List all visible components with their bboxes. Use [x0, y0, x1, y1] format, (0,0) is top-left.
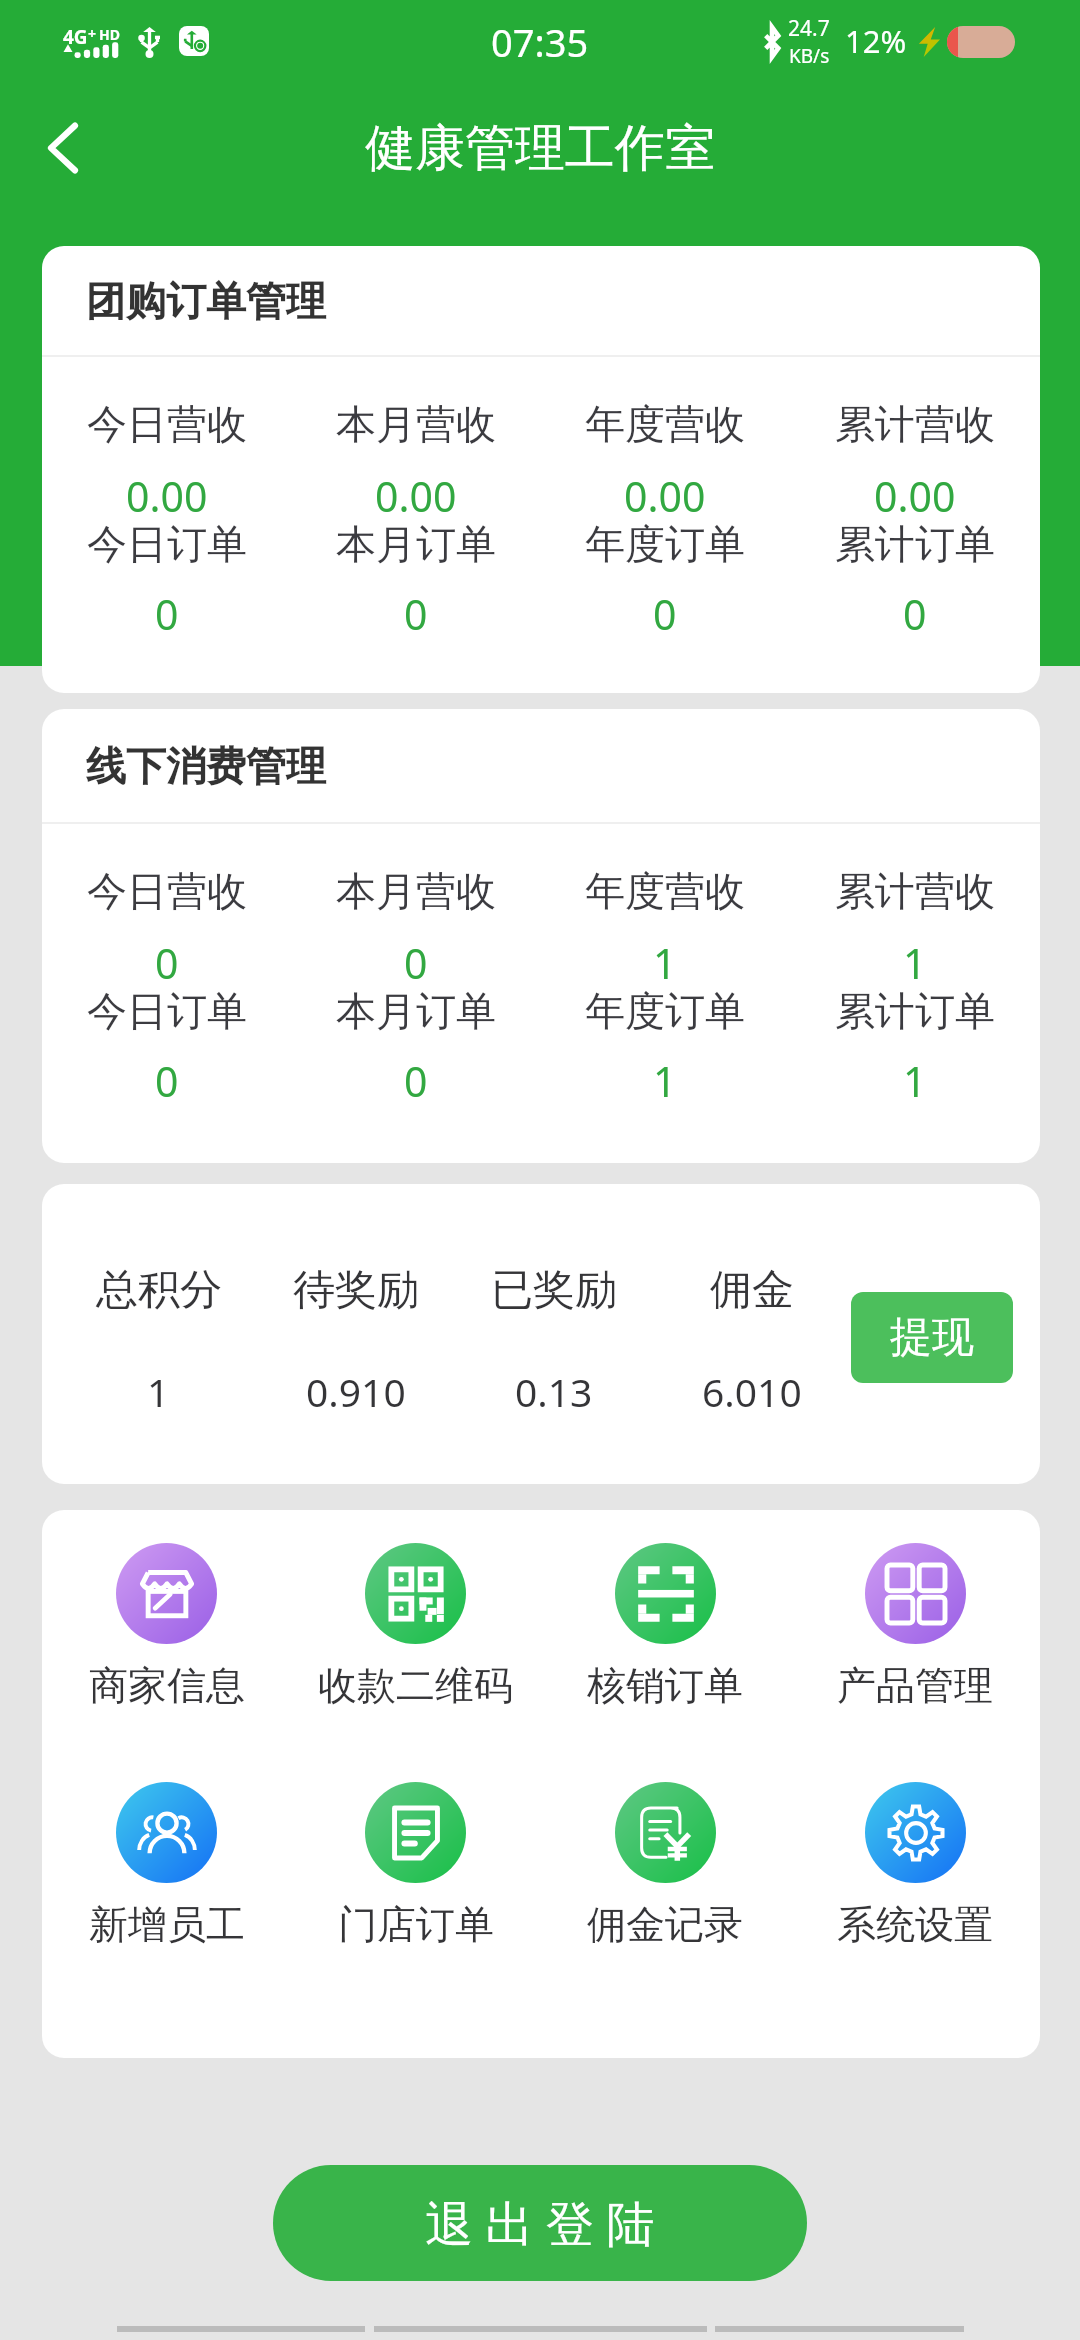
staticText: 0: [404, 1053, 428, 1109]
staticText: 本月营收: [336, 399, 496, 449]
staticText: 本月订单: [336, 519, 496, 569]
staticText: 系统设置: [837, 1900, 993, 1949]
staticText: 团购订单管理: [86, 276, 326, 326]
staticText: 24.7: [788, 14, 830, 43]
staticText: 年度订单: [585, 986, 745, 1036]
button[interactable]: 退 出 登 陆: [273, 2165, 807, 2281]
staticText: 今日营收: [87, 866, 247, 916]
staticText: 今日营收: [87, 399, 247, 449]
staticText: HD: [99, 25, 120, 44]
staticText: 线下消费管理: [86, 741, 326, 791]
staticText: 4G: [63, 24, 88, 50]
staticText: 门店订单: [338, 1900, 494, 1949]
staticText: 1: [903, 1053, 927, 1109]
staticText: 佣金: [710, 1264, 794, 1317]
button[interactable]: 新增员工: [42, 1782, 291, 1949]
staticText: 累计营收: [835, 866, 995, 916]
staticText: 总积分: [96, 1264, 222, 1317]
button[interactable]: 商家信息: [42, 1543, 291, 1710]
staticText: 年度营收: [585, 866, 745, 916]
staticText: 本月订单: [336, 986, 496, 1036]
staticText: 0.00: [126, 468, 208, 524]
staticText: 年度订单: [585, 519, 745, 569]
button[interactable]: 系统设置: [790, 1782, 1040, 1949]
staticText: 新增员工: [89, 1900, 245, 1949]
button[interactable]: 核销订单: [540, 1543, 790, 1710]
staticText: 健康管理工作室: [365, 117, 715, 180]
staticText: 0: [404, 586, 428, 642]
staticText: 商家信息: [89, 1661, 245, 1710]
button[interactable]: 门店订单: [291, 1782, 540, 1949]
staticText: 今日订单: [87, 519, 247, 569]
staticText: 07:35: [491, 16, 589, 68]
staticText: 0: [155, 935, 179, 991]
staticText: 12%: [845, 20, 907, 62]
staticText: 本月营收: [336, 866, 496, 916]
staticText: 核销订单: [587, 1661, 743, 1710]
staticText: 产品管理: [837, 1661, 993, 1710]
staticText: 累计订单: [835, 519, 995, 569]
staticText: 0.00: [375, 468, 457, 524]
staticText: 收款二维码: [318, 1661, 513, 1710]
staticText: 提现: [890, 1311, 974, 1364]
staticText: 佣金记录: [587, 1900, 743, 1949]
staticText: 1: [653, 935, 677, 991]
button[interactable]: 提现: [851, 1292, 1013, 1383]
staticText: 0.00: [624, 468, 706, 524]
button[interactable]: 佣金记录: [540, 1782, 790, 1949]
staticText: 0: [155, 586, 179, 642]
staticText: 累计营收: [835, 399, 995, 449]
staticText: 0: [155, 1053, 179, 1109]
staticText: +: [88, 24, 97, 43]
staticText: 已奖励: [491, 1264, 617, 1317]
button[interactable]: 产品管理: [790, 1543, 1040, 1710]
staticText: 1: [653, 1053, 677, 1109]
staticText: KB/s: [789, 43, 830, 69]
staticText: 0.13: [515, 1365, 593, 1418]
staticText: 1: [147, 1365, 170, 1418]
staticText: 0: [903, 586, 927, 642]
staticText: 1: [903, 935, 927, 991]
staticText: 6.010: [702, 1365, 802, 1418]
staticText: 0: [404, 935, 428, 991]
staticText: 0: [653, 586, 677, 642]
staticText: 0.910: [306, 1365, 406, 1418]
staticText: 0.00: [874, 468, 956, 524]
button[interactable]: 收款二维码: [291, 1543, 540, 1710]
staticText: 年度营收: [585, 399, 745, 449]
staticText: 累计订单: [835, 986, 995, 1036]
button[interactable]: Back: [8, 93, 118, 203]
staticText: 今日订单: [87, 986, 247, 1036]
staticText: 待奖励: [293, 1264, 419, 1317]
staticText: 退 出 登 陆: [425, 2190, 655, 2256]
